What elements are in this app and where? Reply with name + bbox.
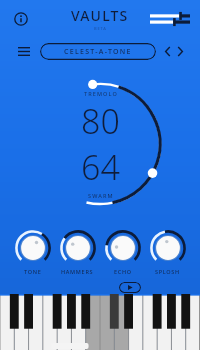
- button[interactable]: HAMMERS: [55, 230, 100, 275]
- button[interactable]: TONE: [10, 230, 55, 275]
- button[interactable]: Info: [10, 8, 32, 30]
- staticText: TONE: [24, 268, 42, 275]
- staticText: CELEST-A-TONE: [64, 47, 132, 57]
- staticText: 80: [81, 98, 120, 144]
- button[interactable]: CELEST-A-TONE: [40, 43, 156, 60]
- button[interactable]: Play: [119, 282, 141, 293]
- staticText: HAMMERS: [61, 268, 94, 275]
- button[interactable]: Keyboard: [0, 294, 200, 350]
- staticText: BETA: [94, 26, 107, 31]
- button[interactable]: Menu: [14, 41, 34, 61]
- staticText: ECHO: [114, 268, 132, 275]
- button[interactable]: TREMOLO: [81, 90, 120, 199]
- button[interactable]: Next preset: [174, 41, 186, 61]
- button[interactable]: Mixer: [148, 8, 192, 30]
- staticText: SPLOSH: [155, 268, 180, 275]
- button[interactable]: Previous preset: [162, 41, 174, 61]
- staticText: SWARM: [88, 192, 114, 199]
- staticText: TREMOLO: [84, 90, 118, 97]
- button[interactable]: ECHO: [100, 230, 145, 275]
- button[interactable]: SPLOSH: [145, 230, 190, 275]
- staticText: 64: [81, 144, 120, 190]
- staticText: VAULTS: [71, 6, 129, 25]
